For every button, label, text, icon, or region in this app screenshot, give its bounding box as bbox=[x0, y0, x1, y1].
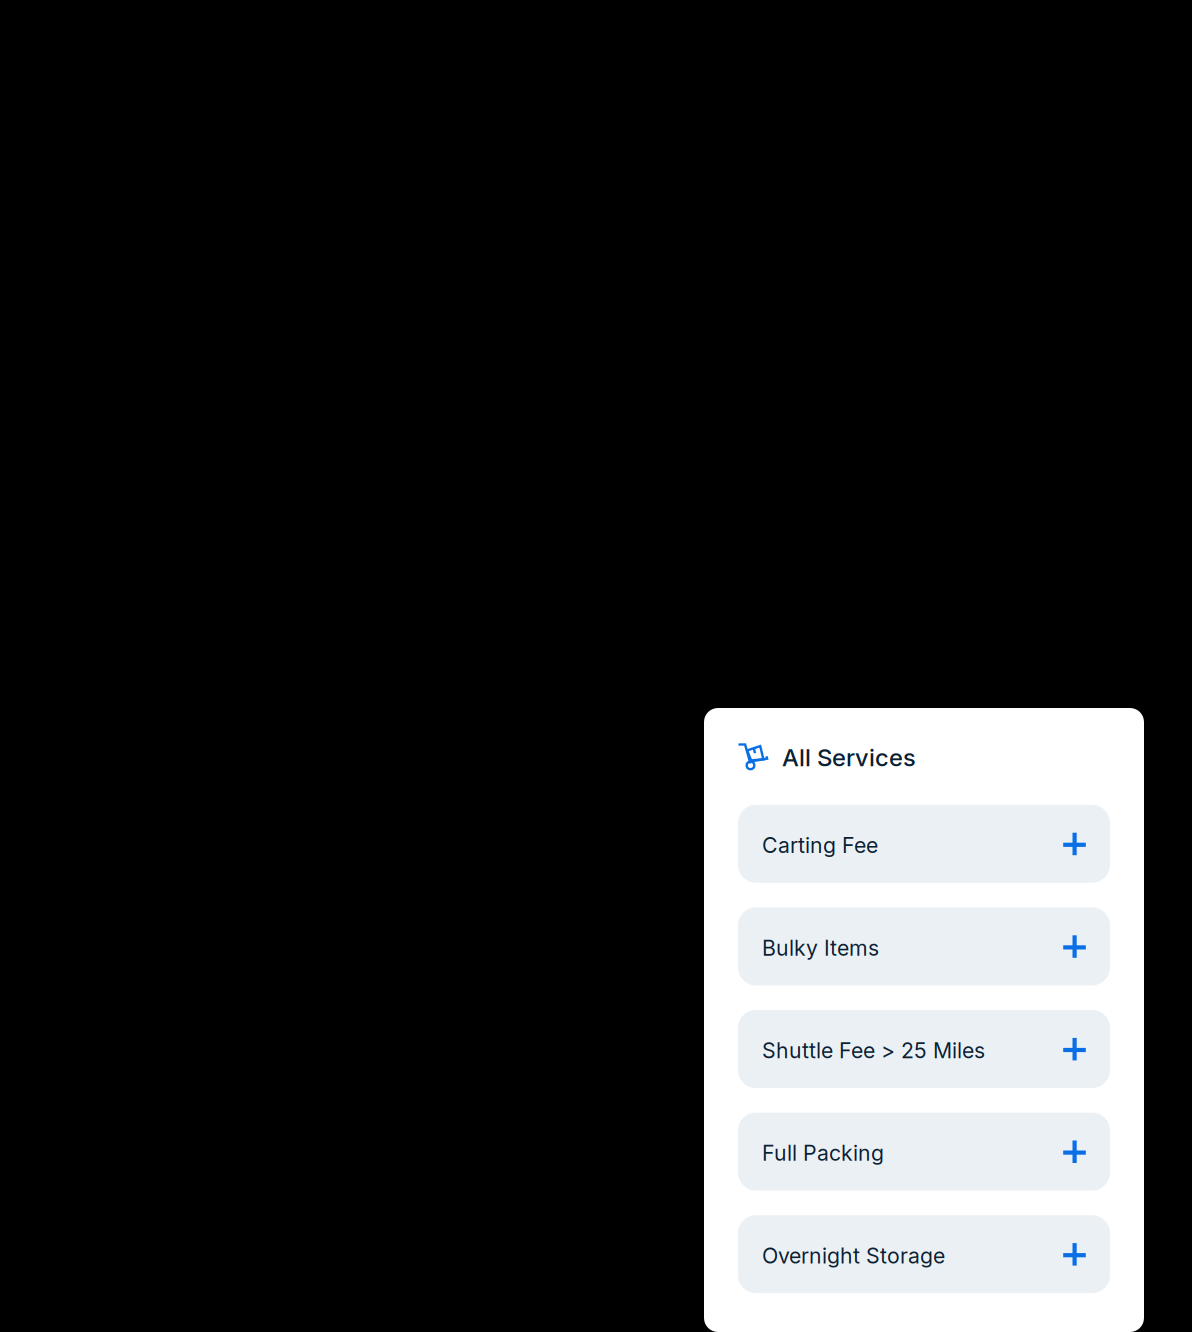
button[interactable]: Shuttle Fee > 25 Miles bbox=[738, 1010, 1110, 1088]
button[interactable]: Overnight Storage bbox=[738, 1215, 1110, 1293]
staticText: Full Packing bbox=[762, 1140, 884, 1166]
staticText: All Services bbox=[782, 743, 916, 772]
button[interactable]: Full Packing bbox=[738, 1113, 1110, 1191]
staticText: Shuttle Fee > 25 Miles bbox=[762, 1038, 985, 1063]
staticText: Carting Fee bbox=[762, 832, 878, 858]
staticText: Bulky Items bbox=[762, 935, 879, 961]
button[interactable]: Carting Fee bbox=[738, 805, 1110, 883]
button[interactable]: Bulky Items bbox=[738, 907, 1110, 985]
staticText: Overnight Storage bbox=[762, 1243, 945, 1269]
